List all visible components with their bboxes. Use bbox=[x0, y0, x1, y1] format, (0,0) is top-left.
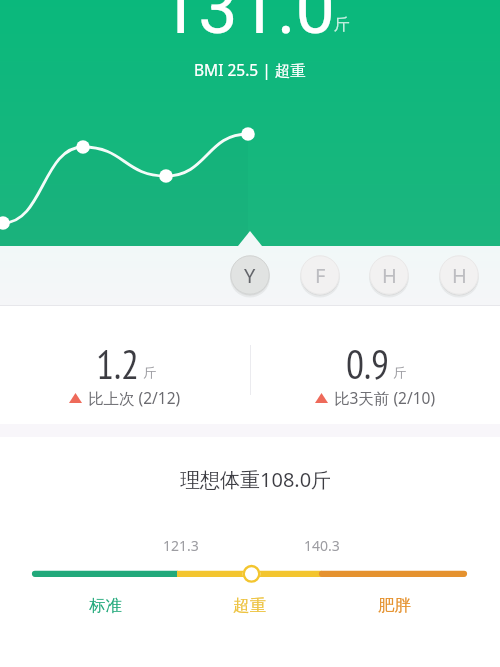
staticText: Y bbox=[244, 262, 256, 289]
button[interactable]: 0.9 bbox=[250, 306, 500, 424]
staticText: 超重 bbox=[233, 595, 266, 616]
staticText: 斤 bbox=[334, 15, 350, 35]
staticText: 121.3 bbox=[163, 536, 199, 555]
button[interactable]: H bbox=[369, 255, 409, 295]
staticText: 比3天前 (2/10) bbox=[334, 387, 436, 408]
staticText: 1.2 bbox=[96, 338, 140, 390]
staticText: 0.9 bbox=[346, 338, 390, 390]
staticText: H bbox=[452, 262, 467, 289]
button[interactable]: 肥胖 bbox=[378, 595, 411, 616]
button[interactable]: 超重 bbox=[233, 595, 266, 616]
button[interactable]: H bbox=[439, 255, 479, 295]
button[interactable]: Y bbox=[230, 255, 270, 295]
button[interactable]: 标准 bbox=[89, 595, 122, 616]
staticText: H bbox=[382, 262, 397, 289]
staticText: 斤 bbox=[143, 364, 156, 380]
button[interactable]: F bbox=[300, 255, 340, 295]
staticText: 理想体重108.0斤 bbox=[180, 466, 332, 493]
staticText: 标准 bbox=[89, 595, 122, 616]
staticText: 比上次 (2/12) bbox=[88, 387, 181, 408]
staticText: F bbox=[315, 262, 326, 289]
button[interactable]: 1.2 bbox=[0, 306, 250, 424]
staticText: 140.3 bbox=[304, 536, 340, 555]
staticText: 肥胖 bbox=[378, 595, 411, 616]
staticText: 131.0 bbox=[159, 0, 335, 50]
staticText: 斤 bbox=[393, 364, 406, 380]
staticText: BMI 25.5 | 超重 bbox=[194, 59, 306, 80]
